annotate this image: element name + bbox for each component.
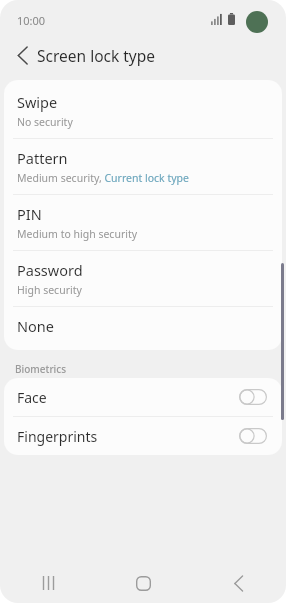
button[interactable]: Account (246, 11, 268, 33)
staticText: None (17, 316, 54, 336)
staticText: Fingerprints (17, 427, 239, 446)
button[interactable]: Face (4, 378, 282, 416)
staticText: Swipe (17, 92, 58, 112)
staticText: Medium to high security (17, 227, 138, 241)
button[interactable]: Password (4, 251, 282, 306)
button[interactable]: Back (191, 563, 286, 603)
button[interactable]: Fingerprints (4, 417, 282, 455)
staticText: Biometrics (15, 362, 67, 376)
button[interactable]: Swipe (4, 83, 282, 138)
staticText: Face (17, 388, 239, 407)
staticText: High security (17, 283, 82, 297)
button[interactable]: Pattern (4, 139, 282, 194)
staticText: Pattern (17, 148, 68, 168)
button[interactable]: None (4, 307, 282, 345)
staticText: Password (17, 260, 83, 280)
staticText: PIN (17, 204, 42, 224)
button[interactable]: PIN (4, 195, 282, 250)
staticText: Screen lock type (37, 45, 156, 66)
staticText: Medium security, Current lock type (17, 171, 189, 185)
staticText: No security (17, 115, 73, 129)
staticText: 10:00 (17, 13, 46, 28)
button[interactable]: Navigate up (8, 41, 36, 69)
button[interactable]: Recents (0, 563, 96, 603)
button[interactable]: Home (96, 563, 191, 603)
